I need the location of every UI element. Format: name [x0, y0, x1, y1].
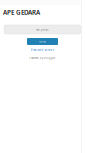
staticText: Powered by Blogger. [29, 56, 56, 60]
button[interactable]: View web version [0, 48, 85, 52]
staticText: APE GEDARA [3, 8, 40, 16]
button[interactable]: Home [27, 38, 58, 45]
staticText: View web version [30, 48, 54, 52]
staticText: No posts. [36, 28, 49, 31]
staticText: Home [38, 40, 46, 43]
